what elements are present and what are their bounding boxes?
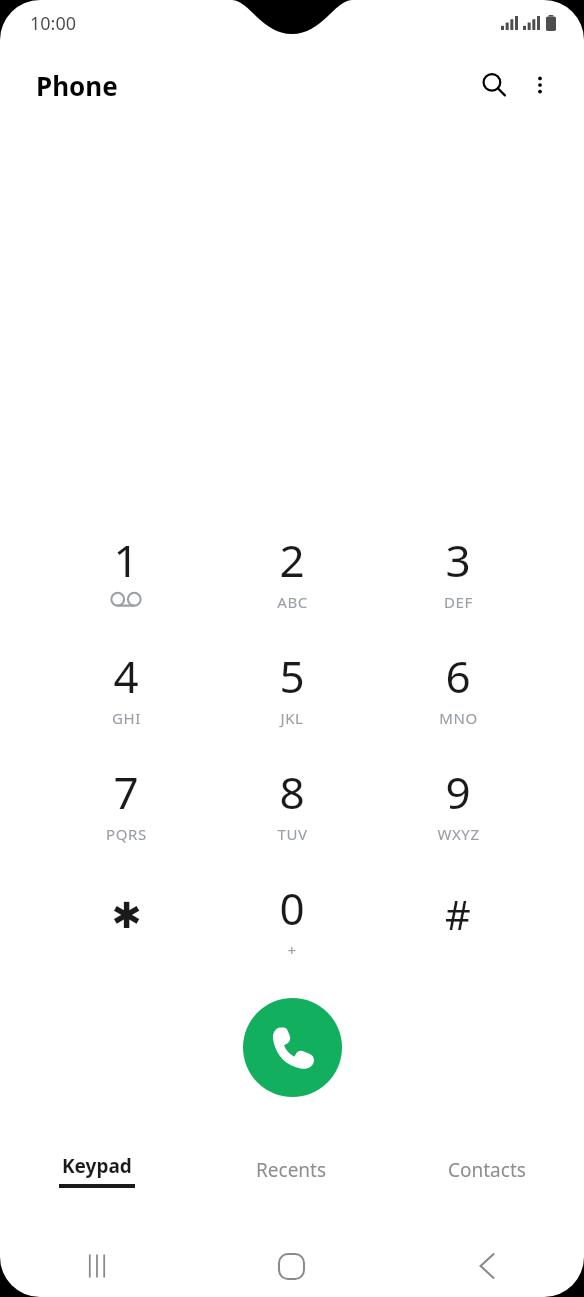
button[interactable]: ✱ bbox=[43, 862, 209, 978]
staticText: PQRS bbox=[106, 824, 147, 844]
button[interactable]: # bbox=[375, 862, 541, 978]
button[interactable]: 2 bbox=[209, 514, 375, 630]
button[interactable]: 7 bbox=[43, 746, 209, 862]
staticText: Recents bbox=[256, 1157, 327, 1183]
staticText: Phone bbox=[36, 68, 118, 103]
button[interactable]: Back bbox=[389, 1235, 584, 1297]
button[interactable]: 1 bbox=[43, 514, 209, 630]
staticText: ✱ bbox=[111, 895, 142, 937]
button[interactable]: Contacts bbox=[389, 1142, 584, 1198]
staticText: DEF bbox=[444, 592, 473, 612]
staticText: MNO bbox=[439, 708, 478, 728]
staticText: Contacts bbox=[448, 1157, 526, 1183]
staticText: 2 bbox=[279, 530, 305, 590]
button[interactable]: 4 bbox=[43, 630, 209, 746]
staticText: TUV bbox=[277, 824, 308, 844]
button[interactable]: Recents bbox=[194, 1142, 389, 1198]
staticText: 8 bbox=[279, 762, 305, 822]
staticText: 0 bbox=[279, 878, 305, 938]
button[interactable]: 0 bbox=[209, 862, 375, 978]
button[interactable]: 5 bbox=[209, 630, 375, 746]
button[interactable]: Call bbox=[243, 998, 342, 1097]
staticText: 6 bbox=[445, 646, 471, 706]
staticText: 4 bbox=[113, 646, 139, 706]
staticText: 7 bbox=[113, 762, 139, 822]
staticText: 5 bbox=[279, 646, 305, 706]
button[interactable]: Search bbox=[470, 61, 518, 109]
staticText: + bbox=[287, 940, 297, 960]
staticText: GHI bbox=[112, 708, 141, 728]
button[interactable]: 8 bbox=[209, 746, 375, 862]
staticText: JKL bbox=[280, 708, 304, 728]
staticText: 10:00 bbox=[30, 11, 77, 36]
button[interactable]: 6 bbox=[375, 630, 541, 746]
staticText: 1 bbox=[113, 530, 139, 590]
button[interactable]: 3 bbox=[375, 514, 541, 630]
button[interactable]: 9 bbox=[375, 746, 541, 862]
staticText: ABC bbox=[277, 592, 308, 612]
staticText: 9 bbox=[445, 762, 471, 822]
button[interactable]: Home bbox=[194, 1235, 389, 1297]
staticText: 3 bbox=[445, 530, 471, 590]
button[interactable]: Keypad bbox=[0, 1142, 194, 1198]
button[interactable]: Recent apps bbox=[0, 1235, 194, 1297]
staticText: WXYZ bbox=[437, 824, 480, 844]
staticText: # bbox=[445, 887, 471, 941]
staticText: Keypad bbox=[62, 1153, 132, 1179]
button[interactable]: More options bbox=[518, 63, 562, 107]
